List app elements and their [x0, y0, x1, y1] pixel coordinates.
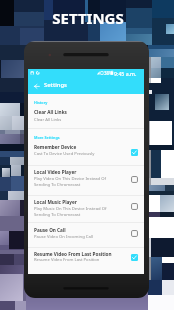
button[interactable]: Pause On Call — [28, 222, 144, 247]
staticText: Clear All Links — [34, 109, 67, 115]
button[interactable]: Local Video Player — [131, 176, 138, 183]
button[interactable]: Local Music Player — [131, 203, 138, 210]
button[interactable]: Local Music Player — [28, 195, 144, 222]
staticText: Settings — [44, 81, 67, 89]
button[interactable]: History — [28, 94, 144, 129]
staticText: More Settings — [34, 135, 60, 140]
staticText: Local Video Player — [34, 169, 77, 175]
button[interactable]: Navigate up — [33, 83, 42, 90]
staticText: Pause Video On Incoming Call — [34, 234, 93, 240]
staticText: Clear All Links — [34, 117, 62, 123]
staticText: SETTINGS — [1, 8, 174, 28]
button[interactable]: Resume Video From Last Position — [131, 254, 138, 261]
staticText: Resume Video From Last Position — [34, 257, 100, 263]
staticText: History — [34, 100, 48, 105]
staticText: Play Music On This Device Instead Of Sen… — [34, 206, 107, 217]
button[interactable]: Remember Device — [131, 149, 138, 156]
staticText: Cast To Device Used Previously — [34, 151, 95, 157]
staticText: Resume Video From Last Position — [34, 251, 112, 257]
button[interactable]: Resume Video From Last Position — [28, 247, 144, 275]
button[interactable]: Pause On Call — [131, 230, 138, 237]
staticText: Pause On Call — [34, 227, 66, 233]
button[interactable]: Local Video Player — [28, 165, 144, 195]
staticText: Play Video On This Device Instead Of Sen… — [34, 176, 106, 187]
staticText: Remember Device — [34, 144, 77, 150]
button[interactable]: More Settings — [28, 129, 144, 165]
staticText: Local Music Player — [34, 199, 77, 205]
staticText: 9:45 a.m. — [114, 70, 137, 77]
staticText: 38% — [104, 70, 113, 76]
